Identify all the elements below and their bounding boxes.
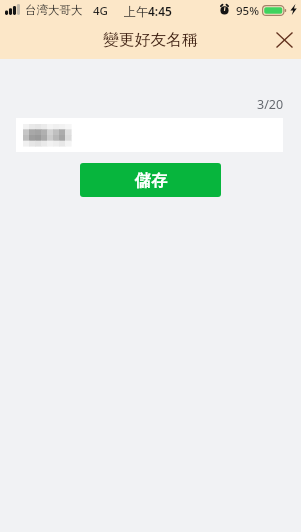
staticText: 儲存 <box>135 171 167 191</box>
staticText: 4G <box>93 3 108 19</box>
button[interactable]: Nickname field <box>16 118 283 152</box>
staticText: 95% <box>236 3 259 19</box>
staticText: 台湾大哥大 <box>25 3 83 17</box>
button[interactable]: 儲存 <box>80 163 221 197</box>
staticText: 上午4:45 <box>124 3 172 19</box>
staticText: 3/20 <box>257 96 284 113</box>
button[interactable]: Close <box>267 23 301 57</box>
staticText: 變更好友名稱 <box>103 30 198 50</box>
